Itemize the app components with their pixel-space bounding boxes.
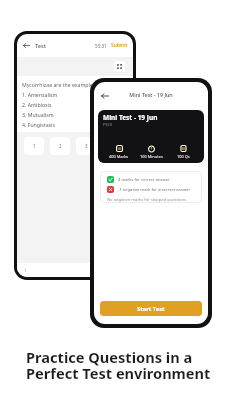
- button[interactable]: 3: [76, 137, 96, 155]
- staticText: Mini Test - 19 Jun: [110, 91, 192, 98]
- button[interactable]: Back: [22, 41, 31, 50]
- staticText: Mycorrhizae are the example of: [22, 81, 100, 88]
- staticText: 100 Qs: [177, 154, 190, 159]
- staticText: 3. Mutualism: [22, 111, 54, 118]
- button[interactable]: Start Test: [100, 301, 202, 316]
- staticText: 4. Fungistasis: [22, 121, 55, 128]
- button[interactable]: 1: [24, 137, 44, 155]
- staticText: Mini Test - 19 Jun: [103, 113, 158, 122]
- staticText: 1: [33, 143, 36, 149]
- staticText: 1: [24, 268, 27, 273]
- button[interactable]: Question palette: [114, 61, 125, 72]
- staticText: 2. Antibiosis: [22, 101, 52, 108]
- staticText: 400 Marks: [109, 154, 129, 159]
- staticText: FY20: [103, 122, 112, 127]
- button[interactable]: Submit: [111, 42, 128, 49]
- staticText: 4 marks for correct answer: [118, 177, 170, 183]
- staticText: 2: [59, 143, 62, 149]
- staticText: 100 Minutes: [140, 154, 163, 159]
- button[interactable]: 4: [102, 137, 122, 155]
- button[interactable]: Back: [100, 91, 110, 101]
- staticText: 1. Amensalism: [22, 91, 58, 98]
- staticText: 3: [85, 143, 88, 149]
- staticText: Start Test: [137, 305, 165, 313]
- staticText: 55:31: [95, 43, 107, 49]
- staticText: Practice Questions in a Perfect Test env…: [26, 347, 211, 384]
- staticText: Test: [35, 42, 46, 50]
- button[interactable]: 2: [50, 137, 70, 155]
- staticText: -1 negative mark for incorrect answer: [118, 187, 191, 193]
- staticText: No negative marks for skipped questions: [107, 197, 186, 203]
